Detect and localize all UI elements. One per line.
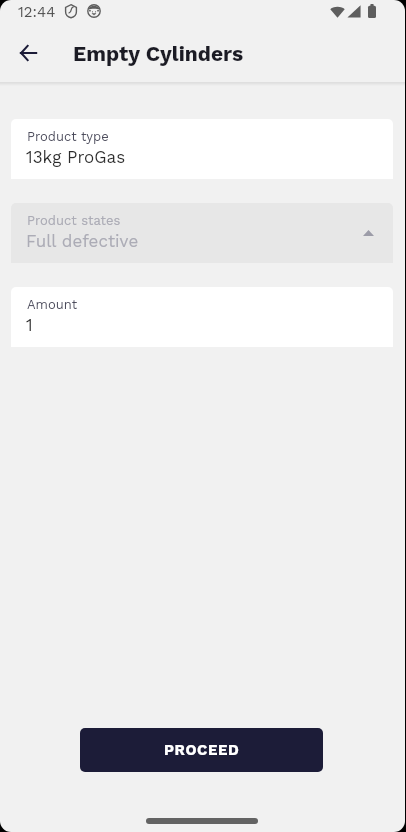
staticText: 13kg ProGas — [26, 147, 126, 167]
staticText: 1 — [26, 315, 33, 335]
staticText: 12:44 — [18, 3, 56, 21]
staticText: Empty Cylinders — [73, 41, 244, 66]
button[interactable]: Product states — [11, 203, 393, 263]
button[interactable]: Amount — [11, 287, 393, 347]
staticText: Amount — [27, 297, 78, 312]
staticText: Product states — [27, 213, 121, 228]
staticText: Full defective — [26, 231, 139, 251]
button[interactable]: PROCEED — [80, 728, 323, 772]
button[interactable]: Product type — [11, 119, 393, 179]
button[interactable]: Back — [8, 33, 48, 73]
staticText: PROCEED — [164, 741, 240, 759]
staticText: Product type — [27, 129, 109, 144]
